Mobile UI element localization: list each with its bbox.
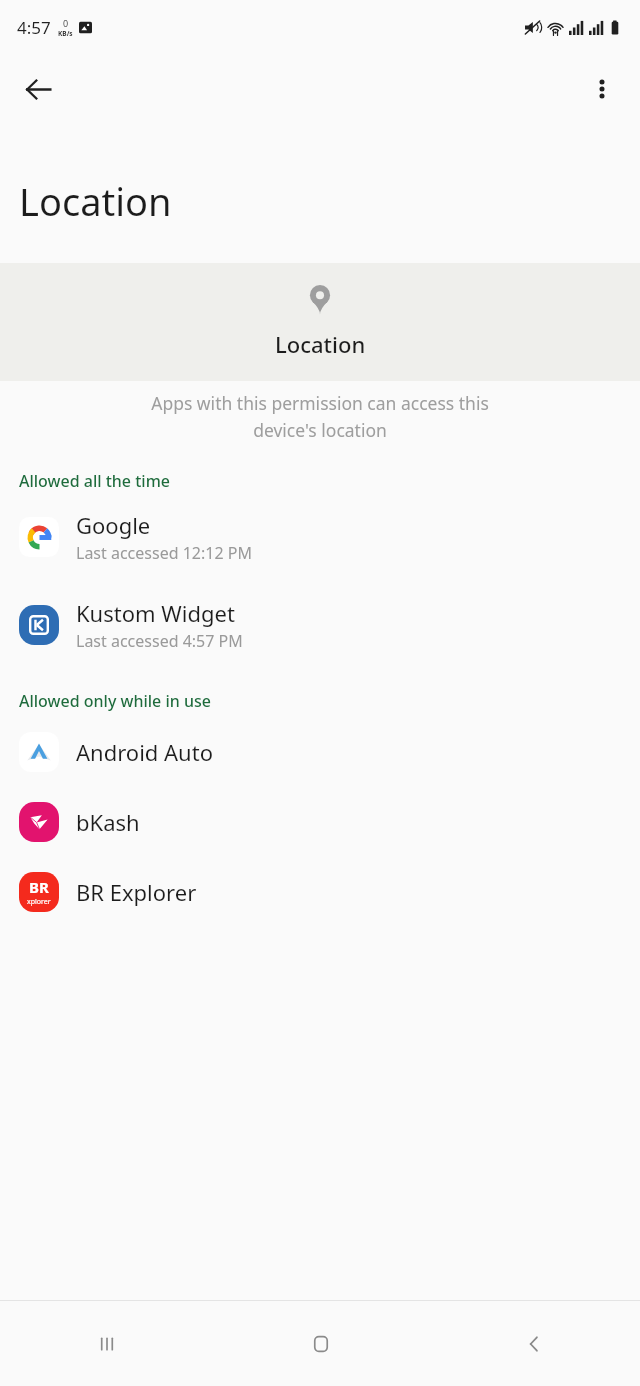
staticText: KB/s bbox=[58, 29, 73, 38]
staticText: Location bbox=[275, 329, 366, 359]
staticText: Allowed all the time bbox=[19, 470, 170, 492]
staticText: Last accessed 12:12 PM bbox=[76, 542, 252, 564]
staticText: xplorer bbox=[27, 897, 51, 907]
button[interactable]: More options bbox=[574, 61, 630, 117]
button[interactable]: Kustom Widget bbox=[0, 590, 640, 660]
button[interactable]: Recent apps bbox=[0, 1301, 214, 1386]
staticText: BR Explorer bbox=[76, 877, 197, 907]
staticText: Google bbox=[76, 510, 151, 540]
staticText: bKash bbox=[76, 807, 140, 837]
button[interactable]: bKash bbox=[0, 794, 640, 850]
button[interactable]: Android Auto bbox=[0, 724, 640, 780]
staticText: Android Auto bbox=[76, 737, 213, 767]
staticText: Location bbox=[19, 175, 172, 227]
staticText: 4:57 bbox=[17, 16, 51, 39]
button[interactable]: Back bbox=[427, 1301, 640, 1386]
button[interactable]: Home bbox=[214, 1301, 427, 1386]
button[interactable]: Google bbox=[0, 502, 640, 572]
staticText: Last accessed 4:57 PM bbox=[76, 630, 243, 652]
staticText: Apps with this permission can access thi… bbox=[24, 391, 616, 442]
button[interactable]: Back bbox=[10, 61, 66, 117]
button[interactable]: BR bbox=[0, 864, 640, 920]
staticText: BR bbox=[29, 877, 49, 897]
staticText: Kustom Widget bbox=[76, 598, 235, 628]
staticText: Allowed only while in use bbox=[19, 690, 211, 712]
staticText: 0 bbox=[63, 17, 69, 29]
